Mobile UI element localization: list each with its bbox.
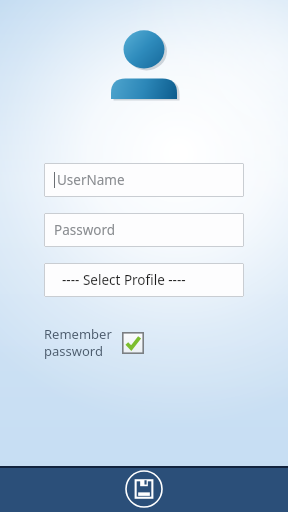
button[interactable]: Save: [124, 469, 164, 509]
button[interactable]: UserName: [44, 163, 244, 197]
button[interactable]: Password: [44, 213, 244, 247]
button[interactable]: Remember password checkbox: [122, 332, 144, 354]
staticText: UserName: [57, 171, 125, 189]
staticText: Remember password: [44, 325, 112, 360]
staticText: ---- Select Profile ----: [62, 271, 186, 289]
staticText: Password: [54, 221, 116, 239]
button[interactable]: ---- Select Profile ----: [44, 263, 244, 297]
button[interactable]: Remember password: [44, 325, 122, 360]
